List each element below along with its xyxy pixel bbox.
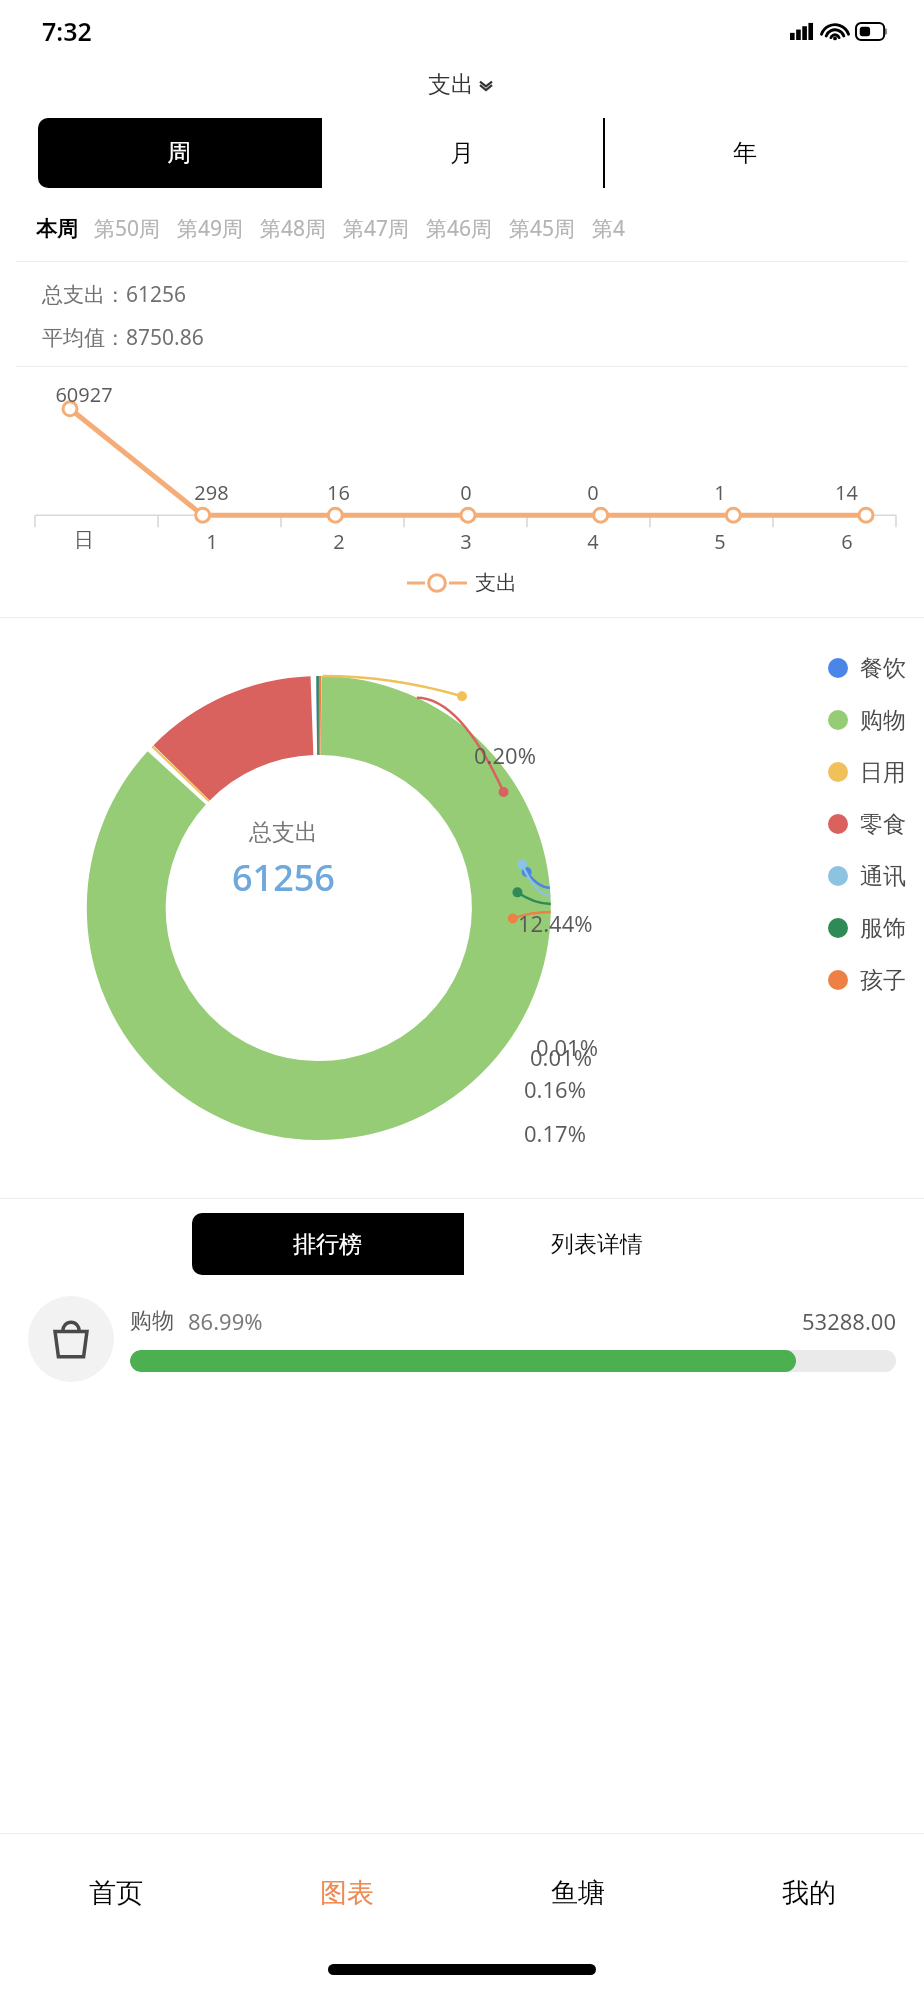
staticText: 支出 [475,570,517,596]
staticText: 第45周 [509,214,576,243]
button[interactable]: 年 [603,118,886,188]
staticText: 第50周 [94,214,161,243]
staticText: 6 [841,528,853,555]
staticText: 首页 [89,1876,143,1910]
staticText: 7:32 [42,14,92,48]
staticText: 53288.00 [802,1306,896,1336]
staticText: 第4 [592,214,626,243]
staticText: 年 [733,138,757,168]
button[interactable]: 列表详情 [462,1213,732,1275]
staticText: 本周 [36,216,78,242]
staticText: 日用 [860,758,906,787]
staticText: 购物 [860,706,906,735]
button[interactable]: 第50周 [86,210,169,247]
button[interactable]: 第4 [584,210,634,247]
staticText: 周 [167,138,191,168]
staticText: 鱼塘 [551,1876,605,1910]
button[interactable]: 第46周 [418,210,501,247]
staticText: 1 [714,479,726,506]
button[interactable]: 第49周 [169,210,252,247]
staticText: 支出 [428,70,474,99]
staticText: 0.20% [474,740,536,770]
button[interactable]: 鱼塘 [462,1834,693,1952]
staticText: 第48周 [260,214,327,243]
button[interactable]: 第45周 [501,210,584,247]
button[interactable]: 服饰 [828,902,906,954]
staticText: 月 [450,138,474,168]
staticText: 第49周 [177,214,244,243]
button[interactable]: 日用 [828,746,906,798]
button[interactable]: 图表 [231,1834,462,1952]
staticText: 总支出：61256 [42,280,187,309]
button[interactable]: 孩子 [828,954,906,1006]
staticText: 61256 [232,853,335,902]
button[interactable]: 购物 [28,1291,896,1387]
staticText: 5 [714,528,726,555]
button[interactable]: 周 [38,118,320,188]
staticText: 12.44% [518,908,593,938]
staticText: 3 [460,528,472,555]
staticText: 日 [74,528,94,553]
button[interactable]: 我的 [693,1834,924,1952]
staticText: 1 [206,528,218,555]
staticText: 购物 [130,1307,174,1335]
staticText: 排行榜 [293,1230,362,1259]
staticText: 0.01% [530,1042,592,1072]
staticText: 通讯 [860,862,906,891]
staticText: 4 [587,528,599,555]
staticText: 第46周 [426,214,493,243]
staticText: 2 [333,528,345,555]
staticText: 0.16% [524,1074,586,1104]
staticText: 16 [327,479,350,506]
staticText: 0 [587,479,599,506]
staticText: 第47周 [343,214,410,243]
staticText: 0.17% [524,1118,586,1148]
button[interactable]: 排行榜 [192,1213,462,1275]
button[interactable]: 本周 [28,212,86,246]
staticText: 孩子 [860,966,906,995]
button[interactable]: 首页 [0,1834,231,1952]
staticText: 60927 [55,381,113,408]
button[interactable]: 月 [320,118,603,188]
staticText: 零食 [860,810,906,839]
staticText: 餐饮 [860,654,906,683]
button[interactable]: 第47周 [335,210,418,247]
staticText: 0.01% [536,1032,598,1062]
staticText: 列表详情 [551,1230,643,1259]
button[interactable]: 通讯 [828,850,906,902]
staticText: 图表 [320,1876,374,1910]
button[interactable]: 零食 [828,798,906,850]
staticText: 298 [194,479,229,506]
staticText: 0 [460,479,472,506]
staticText: 我的 [782,1876,836,1910]
staticText: 14 [835,479,858,506]
button[interactable]: 餐饮 [828,642,906,694]
staticText: 86.99% [188,1306,263,1336]
staticText: 服饰 [860,914,906,943]
button[interactable]: 支出 [0,62,924,106]
button[interactable]: 购物 [828,694,906,746]
staticText: 平均值：8750.86 [42,323,204,352]
button[interactable]: 第48周 [252,210,335,247]
staticText: 总支出 [249,818,318,847]
